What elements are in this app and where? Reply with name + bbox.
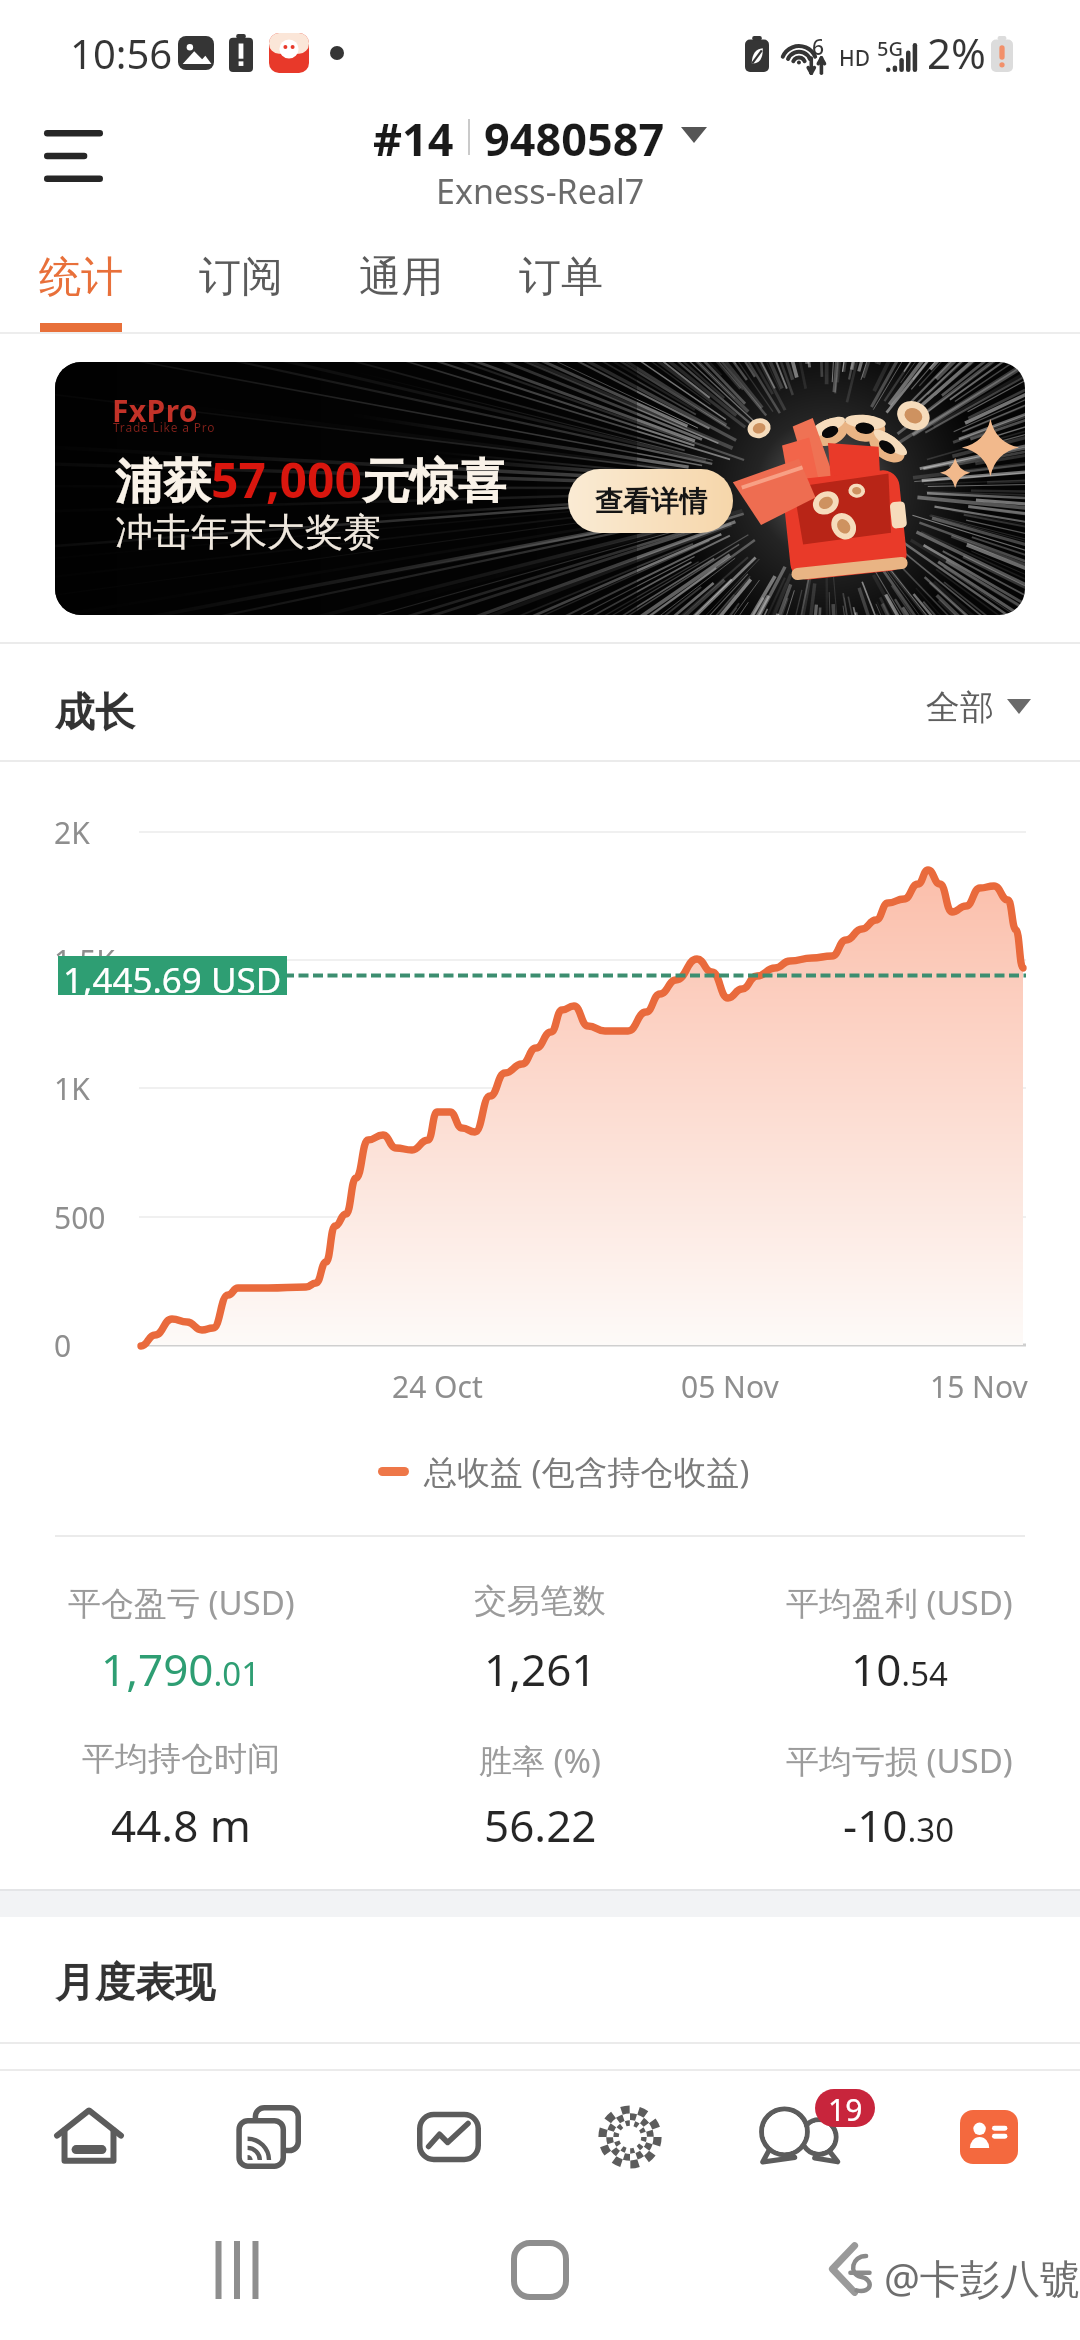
button[interactable]: FxPro promotion banner [55, 362, 1025, 615]
staticText: HD [839, 44, 871, 73]
staticText: 平仓盈亏 (USD) [68, 1580, 295, 1625]
staticText: 2% [927, 24, 986, 81]
staticText: 1K [54, 1068, 90, 1109]
button[interactable]: #14 [360, 108, 720, 166]
staticText: 6 [812, 33, 825, 62]
button[interactable]: Recent apps [192, 2225, 282, 2315]
button[interactable]: 订单 [500, 232, 622, 334]
staticText: 全部 [926, 686, 994, 729]
staticText: 交易笔数 [474, 1580, 606, 1622]
staticText: 15 Nov [930, 1366, 1028, 1407]
button[interactable]: Signals [197, 2077, 341, 2197]
button[interactable]: Home [495, 2225, 585, 2315]
staticText: 56.22 [484, 1795, 597, 1855]
staticText: 订单 [519, 251, 603, 304]
staticText: 44.8 m [111, 1795, 251, 1855]
staticText: 1.5K [54, 940, 115, 981]
staticText: 平均亏损 (USD) [786, 1738, 1013, 1783]
staticText: 10.54 [851, 1639, 948, 1699]
button[interactable]: 全部 [926, 686, 1031, 729]
staticText: -10.30 [843, 1795, 955, 1855]
staticText: 10:56 [70, 26, 173, 80]
staticText: 统计 [39, 251, 123, 304]
staticText: 05 Nov [681, 1366, 779, 1407]
staticText: 平均盈利 (USD) [786, 1580, 1013, 1625]
button[interactable]: Back [806, 2233, 878, 2305]
staticText: 1,261 [484, 1639, 597, 1699]
staticText: 成长 [55, 687, 135, 737]
staticText: FxPro [112, 390, 198, 431]
button[interactable]: 查看详情 [568, 469, 733, 533]
button[interactable]: Charts [377, 2077, 521, 2197]
staticText: 1,445.69 USD [63, 956, 282, 995]
staticText: 冲击年末大奖赛 [115, 508, 381, 556]
staticText: 胜率 (%) [479, 1738, 601, 1783]
staticText: 1,790.01 [101, 1639, 261, 1699]
button[interactable]: Explore [558, 2077, 702, 2197]
button[interactable]: Menu [14, 114, 132, 198]
button[interactable]: 统计 [20, 232, 142, 334]
button[interactable]: Home [17, 2077, 161, 2197]
staticText: 2K [54, 812, 90, 853]
staticText: 通用 [359, 251, 443, 304]
staticText: Trade Like a Pro [113, 419, 216, 435]
staticText: 9480587 [484, 108, 665, 166]
staticText: 0 [54, 1325, 72, 1366]
staticText: 平均持仓时间 [82, 1738, 280, 1780]
staticText: 5G [877, 35, 903, 62]
button[interactable]: 订阅 [180, 232, 302, 334]
button[interactable]: Profile [917, 2077, 1061, 2197]
staticText: @卡彭八號 [884, 2250, 1080, 2305]
staticText: 查看详情 [595, 484, 707, 519]
button[interactable]: Chat [749, 2077, 893, 2197]
staticText: 19 [828, 2089, 863, 2127]
staticText: 浦获57,000元惊喜 [115, 447, 506, 513]
staticText: 月度表现 [55, 1957, 215, 2007]
staticText: #14 [373, 108, 454, 166]
button[interactable]: 通用 [340, 232, 462, 334]
staticText: 订阅 [199, 251, 283, 304]
staticText: 24 Oct [392, 1366, 483, 1407]
staticText: Exness-Real7 [436, 168, 645, 214]
staticText: 总收益 (包含持仓收益) [424, 1449, 750, 1494]
staticText: 500 [54, 1197, 106, 1238]
